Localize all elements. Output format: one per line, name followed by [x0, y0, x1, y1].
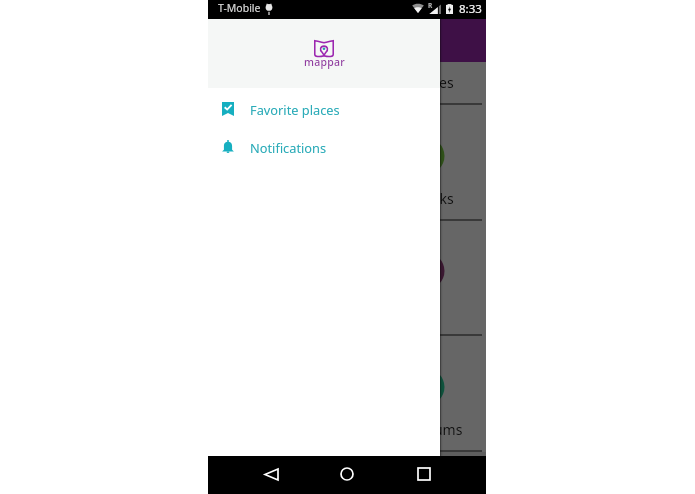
staticText: T-Mobile: [218, 1, 261, 15]
staticText: City parks: [389, 189, 454, 208]
staticText: Notifications: [250, 139, 327, 156]
button[interactable]: Recent apps: [410, 460, 438, 488]
button[interactable]: Cafes: [208, 221, 486, 336]
button[interactable]: City parks: [208, 105, 486, 221]
button[interactable]: Notifications: [208, 128, 440, 166]
button[interactable]: Home: [333, 460, 361, 488]
button[interactable]: Back: [257, 460, 285, 488]
staticText: Favorite places: [250, 101, 340, 118]
button[interactable]: Favorite places: [208, 90, 440, 128]
staticText: R: [428, 1, 433, 10]
staticText: Nearby places: [361, 73, 454, 92]
button[interactable]: Museums: [208, 336, 486, 452]
staticText: Museums: [398, 420, 463, 439]
staticText: mappar: [304, 55, 345, 69]
button[interactable]: Nearby places: [208, 62, 486, 105]
staticText: 8:33: [459, 1, 482, 17]
